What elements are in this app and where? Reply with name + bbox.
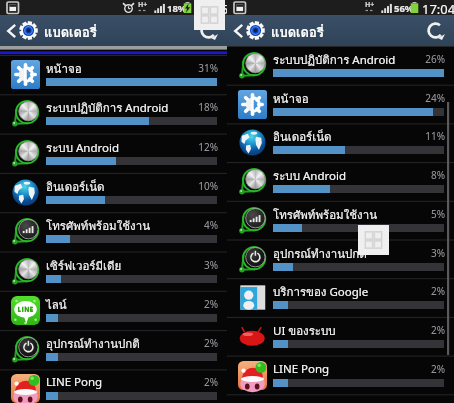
button[interactable]	[0, 134, 227, 173]
staticText: หน้าจอ	[46, 60, 82, 78]
staticText: ระบบ Android	[46, 139, 119, 157]
staticText: 8%	[413, 168, 445, 182]
staticText: ระบบปฏิบัติการ Android	[273, 51, 396, 69]
staticText: อินเดอร์เน็ด	[46, 178, 105, 196]
staticText: 18%	[186, 100, 218, 114]
staticText: โทรศัพท์พร้อมใช้งาน	[273, 206, 377, 224]
staticText: 3%	[413, 246, 445, 260]
staticText: 12%	[186, 140, 218, 154]
staticText: 17:04	[422, 0, 454, 15]
button[interactable]	[0, 330, 227, 369]
staticText: 5%	[413, 207, 445, 221]
staticText: 11%	[413, 129, 445, 143]
button[interactable]	[0, 252, 227, 291]
staticText: 2%	[413, 362, 445, 376]
button[interactable]	[227, 46, 454, 85]
button[interactable]	[0, 94, 227, 133]
button[interactable]	[0, 212, 227, 251]
button[interactable]	[227, 123, 454, 162]
staticText: H+	[365, 0, 375, 10]
button[interactable]: Apps	[194, 0, 225, 30]
button[interactable]	[0, 55, 227, 94]
staticText: LINE Pong	[273, 361, 330, 377]
staticText: UI ของระบบ	[273, 322, 336, 340]
button[interactable]: Apps	[358, 225, 389, 255]
staticText: 18%	[167, 2, 187, 15]
staticText: แบดเดอรี่	[44, 22, 97, 43]
button[interactable]	[227, 356, 454, 395]
staticText: แบดเดอรี่	[271, 22, 324, 43]
staticText: 2%	[413, 284, 445, 298]
staticText: 2%	[186, 336, 218, 350]
button[interactable]	[227, 162, 454, 201]
staticText: 3%	[186, 258, 218, 272]
staticText: 2%	[186, 375, 218, 389]
staticText: 2%	[413, 323, 445, 337]
staticText: ระบบปฏิบัติการ Android	[46, 99, 169, 117]
button[interactable]: Navigate up	[2, 15, 20, 46]
button[interactable]	[227, 240, 454, 279]
staticText: 4%	[186, 218, 218, 232]
staticText: 10%	[186, 179, 218, 193]
button[interactable]: Refresh	[425, 20, 446, 41]
staticText: 31%	[186, 61, 218, 75]
staticText: เซิร์ฟเวอร์มีเดีย	[46, 257, 122, 275]
staticText: อุปกรณ์ทำงานปกติ	[273, 245, 367, 263]
button[interactable]: Refresh	[198, 20, 219, 41]
staticText: 2%	[186, 297, 218, 311]
button[interactable]	[0, 369, 227, 403]
button[interactable]	[0, 173, 227, 212]
staticText: หน้าจอ	[273, 90, 309, 108]
staticText: ไลน์	[46, 296, 67, 314]
staticText: 56%	[394, 2, 414, 15]
button[interactable]	[227, 317, 454, 356]
staticText: บริการของ Google	[273, 283, 369, 301]
staticText: โทรศัพท์พร้อมใช้งาน	[46, 217, 150, 235]
staticText: LINE Pong	[46, 374, 103, 390]
button[interactable]	[227, 201, 454, 240]
button[interactable]	[227, 85, 454, 124]
button[interactable]	[0, 291, 227, 330]
staticText: H+	[138, 0, 148, 10]
staticText: 26%	[413, 52, 445, 66]
staticText: 17:05	[195, 0, 229, 15]
button[interactable]: Navigate up	[229, 15, 247, 46]
staticText: ระบบ Android	[273, 167, 346, 185]
button[interactable]	[227, 278, 454, 317]
staticText: อุปกรณ์ทำงานปกติ	[46, 335, 140, 353]
staticText: อินเดอร์เน็ด	[273, 128, 332, 146]
staticText: 24%	[413, 91, 445, 105]
